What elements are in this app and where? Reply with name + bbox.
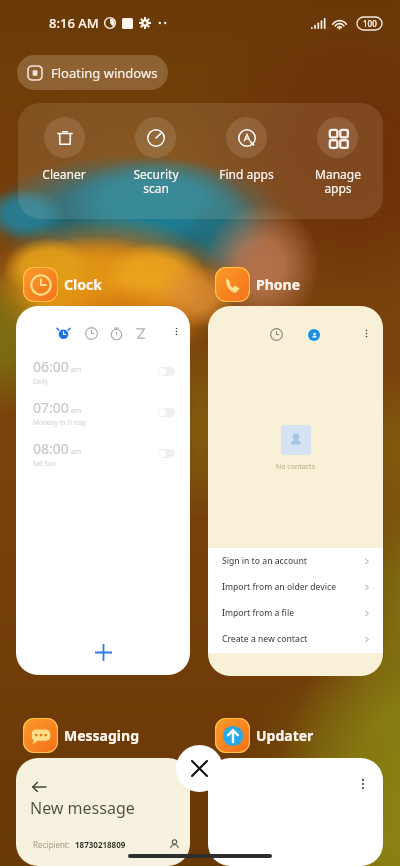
staticText: 08:00 (33, 439, 69, 458)
staticText: 18730218809 (75, 839, 126, 850)
staticText: Clock (64, 275, 102, 294)
staticText: 07:00 (33, 398, 69, 417)
button[interactable]: Create a new contact (208, 626, 383, 652)
staticText: Daily (33, 377, 49, 386)
button[interactable]: Sign in to an account (208, 548, 383, 574)
staticText: 06:00 (33, 357, 69, 376)
button[interactable]: No contacts (208, 306, 383, 676)
staticText: Import from a file (222, 607, 363, 619)
staticText: Recipient: (33, 839, 70, 850)
staticText: am (69, 406, 82, 416)
button[interactable]: Security scan (110, 103, 201, 219)
button[interactable]: Import from a file (208, 600, 383, 626)
staticText: Sat Sun (33, 459, 56, 468)
staticText: Import from an older device (222, 581, 363, 593)
button[interactable] (208, 758, 383, 866)
staticText: Messaging (64, 726, 139, 745)
staticText: Phone (256, 275, 301, 294)
staticText: Security scan (133, 166, 179, 197)
staticText: Manage apps (315, 166, 361, 197)
button[interactable]: New message (16, 758, 190, 866)
button[interactable]: Cleaner (18, 103, 110, 219)
button[interactable]: Import from an older device (208, 574, 383, 600)
staticText: Updater (256, 726, 314, 745)
button[interactable]: Close all (176, 745, 223, 792)
staticText: Cleaner (42, 166, 86, 182)
staticText: New message (30, 797, 135, 819)
staticText: 8:16 AM (49, 14, 99, 32)
staticText: Floating windows (51, 64, 158, 82)
staticText: Sign in to an account (222, 555, 363, 567)
staticText: am (69, 365, 82, 375)
staticText: Create a new contact (222, 633, 363, 645)
staticText: Find apps (219, 166, 274, 182)
button[interactable]: Find apps (201, 103, 292, 219)
staticText: 100 (363, 18, 377, 29)
button[interactable]: Floating windows (17, 55, 168, 90)
button[interactable]: 06:00 (16, 306, 190, 675)
staticText: am (69, 447, 82, 457)
staticText: No contacts (276, 462, 315, 472)
staticText: Monday to Friday (33, 418, 87, 427)
button[interactable]: Manage apps (292, 103, 383, 219)
